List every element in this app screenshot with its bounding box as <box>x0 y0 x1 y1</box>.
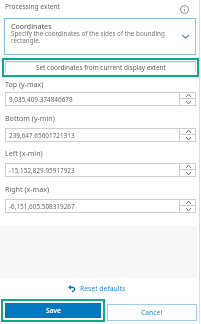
staticText: Cancel <box>141 308 163 317</box>
staticText: Reset defaults <box>80 284 126 293</box>
button[interactable]: Reset defaults <box>68 282 126 294</box>
staticText: 239,647.65601721313 <box>9 131 75 140</box>
button[interactable]: 239,647.65601721313 <box>5 128 196 142</box>
button[interactable]: Decrease Bottom (y-min) <box>180 135 196 141</box>
button[interactable]: Save <box>5 303 101 318</box>
button[interactable]: Coordinates <box>4 18 196 55</box>
staticText: Coordinates <box>11 22 52 32</box>
button[interactable]: Increase Right (x-max) <box>180 200 196 205</box>
button[interactable]: Increase Bottom (y-min) <box>180 129 196 134</box>
button[interactable]: Information <box>179 4 190 15</box>
button[interactable]: Decrease Top (y-max) <box>180 99 196 105</box>
button[interactable]: Cancel <box>107 304 197 321</box>
staticText: Processing extent <box>5 2 60 11</box>
staticText: Set coordinates from current display ext… <box>36 63 166 72</box>
staticText: Bottom (y-min) <box>5 113 55 123</box>
staticText: Left (x-min) <box>5 148 43 158</box>
staticText: -15,152,829.95917923 <box>9 166 75 175</box>
button[interactable]: -15,152,829.95917923 <box>5 163 196 177</box>
staticText: Right (x-max) <box>5 184 50 194</box>
staticText: -6,151,605.508319267 <box>9 202 75 211</box>
button[interactable]: -6,151,605.508319267 <box>5 199 196 213</box>
staticText: Specify the coordinates of the sides of … <box>11 29 176 45</box>
button[interactable]: Increase Left (x-min) <box>180 164 196 169</box>
button[interactable]: Increase Top (y-max) <box>180 93 196 98</box>
button[interactable]: 9,035,409.374846678 <box>5 92 196 106</box>
staticText: Save <box>46 306 61 315</box>
button[interactable]: Set coordinates from current display ext… <box>5 61 196 74</box>
button[interactable]: Decrease Right (x-max) <box>180 206 196 212</box>
button[interactable]: Decrease Left (x-min) <box>180 170 196 176</box>
staticText: 9,035,409.374846678 <box>9 95 73 104</box>
staticText: Top (y-max) <box>5 79 44 89</box>
